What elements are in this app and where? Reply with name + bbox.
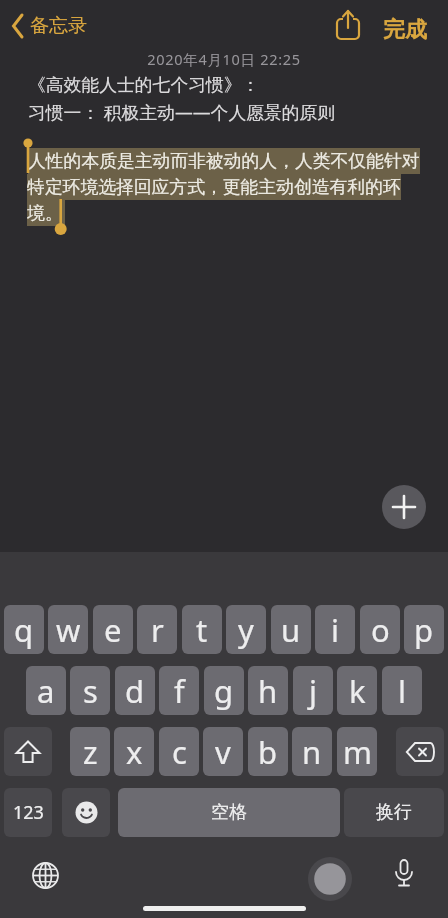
staticText: t <box>196 609 208 651</box>
button[interactable]: x <box>114 727 154 776</box>
staticText: 人性的本质是主动而非被动的人，人类不仅能针对 <box>28 150 420 172</box>
button[interactable] <box>385 855 423 893</box>
staticText: b <box>258 731 278 773</box>
button[interactable]: a <box>26 666 66 715</box>
staticText: 《高效能人士的七个习惯》： <box>28 74 260 96</box>
staticText: 空格 <box>211 801 247 824</box>
staticText: 备忘录 <box>30 14 87 38</box>
staticText: w <box>56 609 81 651</box>
button[interactable]: j <box>293 666 333 715</box>
button[interactable]: k <box>337 666 377 715</box>
button[interactable]: n <box>292 727 332 776</box>
button[interactable]: h <box>248 666 288 715</box>
button[interactable]: l <box>382 666 422 715</box>
staticText: 换行 <box>376 801 412 824</box>
staticText: x <box>126 731 143 773</box>
button[interactable]: f <box>159 666 199 715</box>
button[interactable]: 备忘录 <box>8 14 100 44</box>
button[interactable] <box>396 727 444 776</box>
staticText: 习惯一： 积极主动——个人愿景的原则 <box>28 100 336 124</box>
staticText: k <box>349 670 366 712</box>
staticText: 2020年4月10日 22:25 <box>0 49 448 69</box>
button[interactable]: s <box>70 666 110 715</box>
button[interactable]: c <box>159 727 199 776</box>
button[interactable]: 换行 <box>344 788 444 837</box>
staticText: j <box>309 670 317 712</box>
button[interactable]: m <box>337 727 377 776</box>
button[interactable]: e <box>93 605 133 654</box>
button[interactable]: d <box>115 666 155 715</box>
staticText: v <box>215 731 231 773</box>
button[interactable]: 空格 <box>118 788 340 837</box>
staticText: z <box>83 731 98 773</box>
staticText: n <box>302 731 322 773</box>
button[interactable]: i <box>315 605 355 654</box>
staticText: a <box>37 670 55 712</box>
button[interactable]: p <box>404 605 444 654</box>
staticText: 境。 <box>27 202 63 224</box>
staticText: r <box>151 609 164 651</box>
button[interactable]: r <box>137 605 177 654</box>
staticText: 123 <box>13 800 44 825</box>
staticText: s <box>83 670 98 712</box>
button[interactable]: 123 <box>4 788 52 837</box>
staticText: g <box>214 670 234 712</box>
staticText: 特定环境选择回应方式，更能主动创造有利的环 <box>27 176 401 198</box>
button[interactable] <box>4 727 52 776</box>
button[interactable]: b <box>248 727 288 776</box>
staticText: h <box>258 670 278 712</box>
button[interactable] <box>382 485 426 529</box>
staticText: o <box>371 609 390 651</box>
staticText: d <box>125 670 145 712</box>
button[interactable]: w <box>48 605 88 654</box>
staticText: q <box>14 609 34 651</box>
staticText: y <box>238 609 254 651</box>
staticText: 完成 <box>383 16 427 44</box>
staticText: u <box>281 609 301 651</box>
button[interactable]: t <box>182 605 222 654</box>
button[interactable]: q <box>4 605 44 654</box>
button[interactable]: o <box>360 605 400 654</box>
button[interactable]: y <box>226 605 266 654</box>
staticText: l <box>398 670 406 712</box>
staticText: i <box>331 609 339 651</box>
button[interactable] <box>62 788 110 837</box>
button[interactable]: u <box>271 605 311 654</box>
staticText: e <box>104 609 122 651</box>
button[interactable]: z <box>70 727 110 776</box>
button[interactable] <box>25 855 65 895</box>
staticText: m <box>343 731 372 773</box>
button[interactable]: 完成 <box>379 16 439 44</box>
button[interactable]: g <box>204 666 244 715</box>
button[interactable] <box>332 8 366 44</box>
button[interactable]: v <box>203 727 243 776</box>
staticText: p <box>414 609 434 651</box>
staticText: f <box>174 670 185 712</box>
staticText: c <box>172 731 187 773</box>
